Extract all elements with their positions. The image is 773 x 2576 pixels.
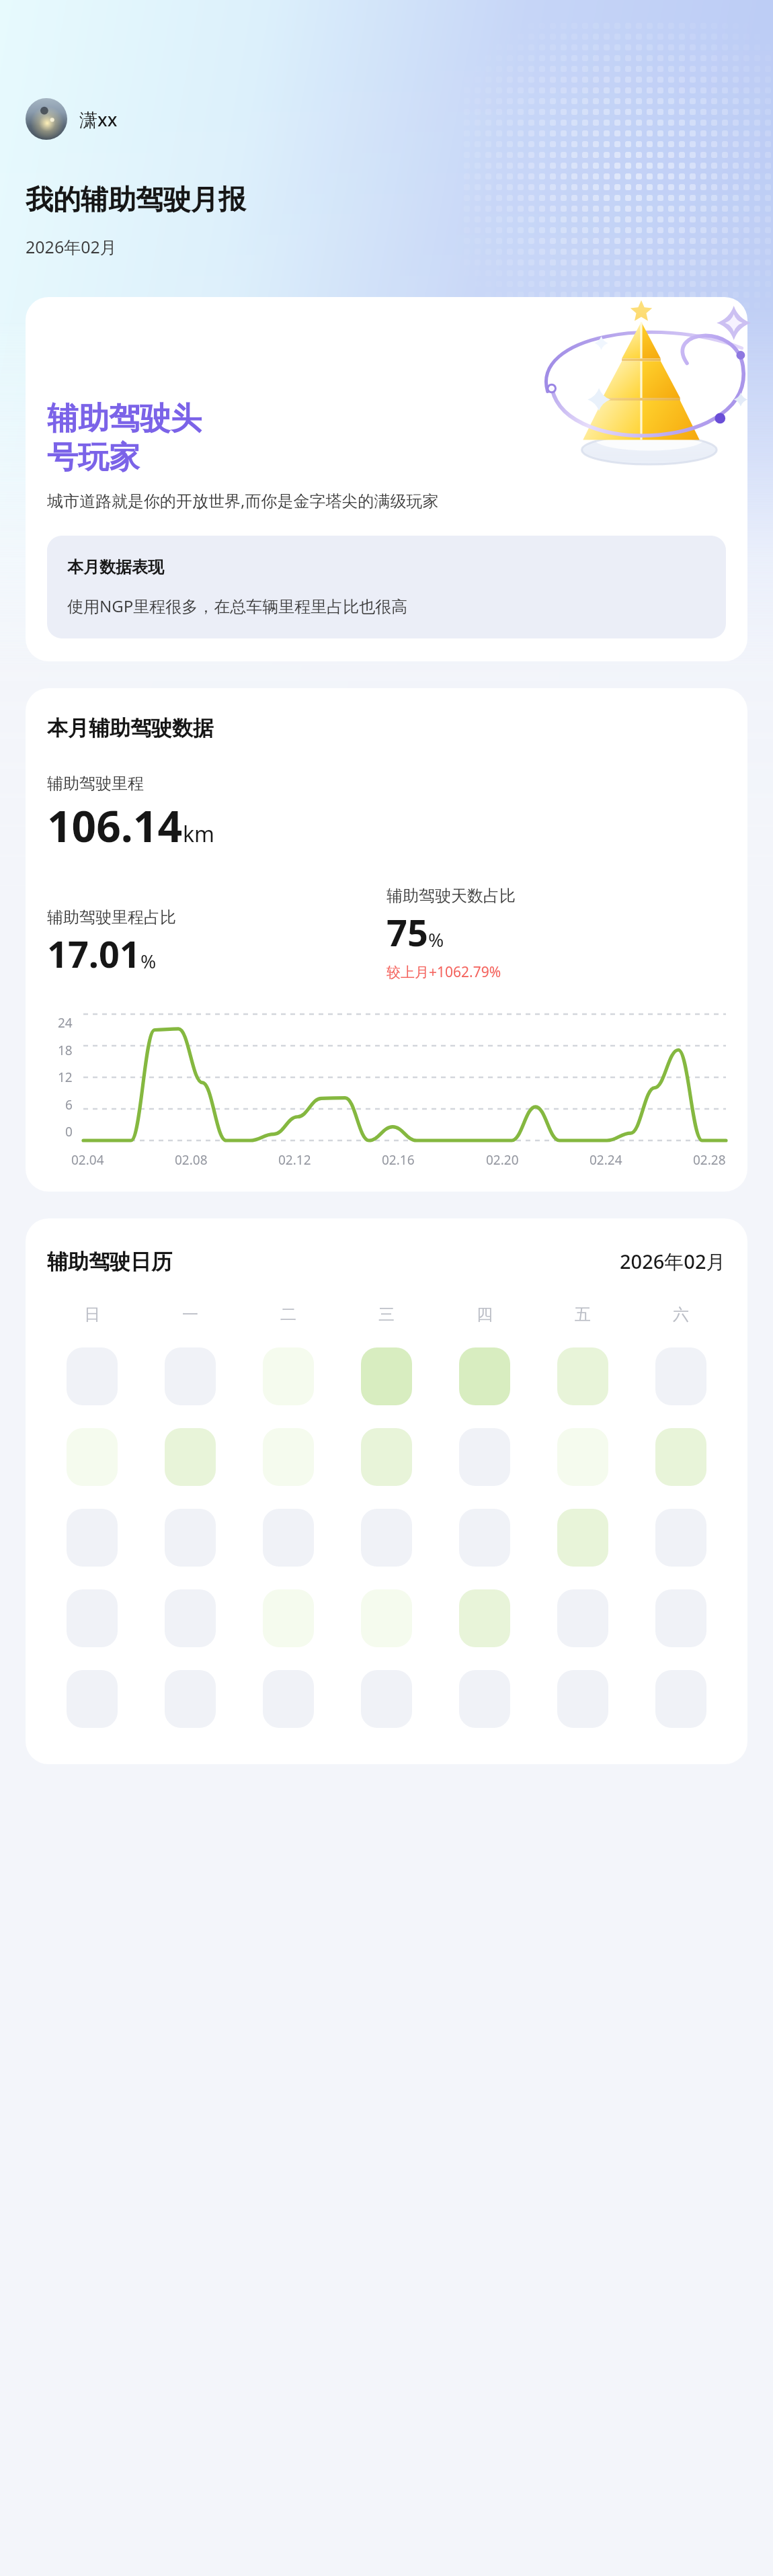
button[interactable]: Day cell — [655, 1347, 706, 1405]
staticText: 使用NGP里程很多，在总车辆里程里占比也很高 — [67, 595, 408, 617]
staticText: 辅助驾驶里程 — [47, 774, 144, 794]
staticText: 2026年02月 — [620, 1248, 726, 1275]
button[interactable]: Day cell — [67, 1428, 118, 1486]
staticText: 五 — [575, 1304, 591, 1325]
staticText: 辅助驾驶头 — [47, 399, 202, 438]
button[interactable]: Day cell — [655, 1670, 706, 1728]
staticText: 潇xx — [79, 107, 118, 132]
button[interactable]: Day cell — [361, 1428, 412, 1486]
button[interactable]: Day cell — [263, 1670, 314, 1728]
button[interactable]: Day cell — [459, 1589, 510, 1647]
staticText: 6 — [65, 1096, 73, 1114]
staticText: 75 — [386, 907, 428, 957]
staticText: 106.14 — [47, 796, 183, 855]
staticText: 02.12 — [278, 1151, 311, 1169]
other: Profile photo — [26, 98, 67, 140]
staticText: 四 — [477, 1304, 493, 1325]
button[interactable]: Day cell — [67, 1347, 118, 1405]
button[interactable]: Day cell — [361, 1589, 412, 1647]
button[interactable]: Day cell — [459, 1428, 510, 1486]
button[interactable]: Day cell — [263, 1589, 314, 1647]
button[interactable]: Day cell — [263, 1509, 314, 1567]
staticText: % — [428, 927, 444, 952]
staticText: 城市道路就是你的开放世界,而你是金字塔尖的满级玩家 — [47, 489, 439, 511]
staticText: 0 — [65, 1123, 73, 1140]
button[interactable]: Day cell — [67, 1509, 118, 1567]
button[interactable]: Day cell — [361, 1509, 412, 1567]
button[interactable]: Day cell — [361, 1670, 412, 1728]
button[interactable]: Day cell — [557, 1670, 608, 1728]
staticText: 我的辅助驾驶月报 — [26, 183, 246, 218]
button[interactable]: Day cell — [459, 1347, 510, 1405]
button[interactable]: Day cell — [361, 1347, 412, 1405]
staticText: 一 — [182, 1304, 198, 1325]
button[interactable]: Day cell — [263, 1428, 314, 1486]
staticText: 17.01 — [47, 929, 140, 979]
button[interactable]: Day cell — [263, 1347, 314, 1405]
staticText: 辅助驾驶天数占比 — [386, 886, 516, 906]
button[interactable]: Day cell — [165, 1509, 216, 1567]
staticText: 02.24 — [589, 1151, 622, 1169]
staticText: 18 — [58, 1042, 73, 1059]
staticText: 号玩家 — [47, 438, 140, 477]
staticText: km — [183, 819, 215, 849]
staticText: 较上月+1062.79% — [386, 962, 501, 982]
staticText: 本月辅助驾驶数据 — [47, 715, 214, 741]
button[interactable]: Day cell — [165, 1670, 216, 1728]
button[interactable]: Day cell — [655, 1509, 706, 1567]
staticText: 三 — [378, 1304, 395, 1325]
button[interactable]: Day cell — [165, 1428, 216, 1486]
staticText: % — [140, 948, 157, 974]
staticText: 02.16 — [382, 1151, 415, 1169]
staticText: 六 — [673, 1304, 689, 1325]
staticText: 日 — [84, 1304, 100, 1325]
button[interactable]: Day cell — [557, 1347, 608, 1405]
staticText: 02.04 — [71, 1151, 104, 1169]
staticText: 02.20 — [486, 1151, 519, 1169]
button[interactable]: Day cell — [165, 1589, 216, 1647]
button[interactable]: Profile photo — [23, 95, 130, 142]
button[interactable]: Day cell — [165, 1347, 216, 1405]
staticText: 二 — [280, 1304, 296, 1325]
staticText: 本月数据表现 — [67, 557, 164, 577]
staticText: 02.28 — [693, 1151, 726, 1169]
button[interactable]: Day cell — [459, 1509, 510, 1567]
button[interactable]: Day cell — [557, 1589, 608, 1647]
staticText: 辅助驾驶里程占比 — [47, 907, 176, 927]
button[interactable]: Day cell — [557, 1509, 608, 1567]
button[interactable]: Day cell — [67, 1589, 118, 1647]
staticText: 12 — [58, 1069, 73, 1086]
button[interactable]: Day cell — [655, 1428, 706, 1486]
button[interactable]: Day cell — [459, 1670, 510, 1728]
staticText: 2026年02月 — [26, 235, 117, 258]
button[interactable]: Day cell — [67, 1670, 118, 1728]
staticText: 辅助驾驶日历 — [47, 1249, 172, 1275]
staticText: 02.08 — [175, 1151, 208, 1169]
staticText: 24 — [58, 1014, 73, 1032]
button[interactable]: Day cell — [655, 1589, 706, 1647]
button[interactable]: Day cell — [557, 1428, 608, 1486]
